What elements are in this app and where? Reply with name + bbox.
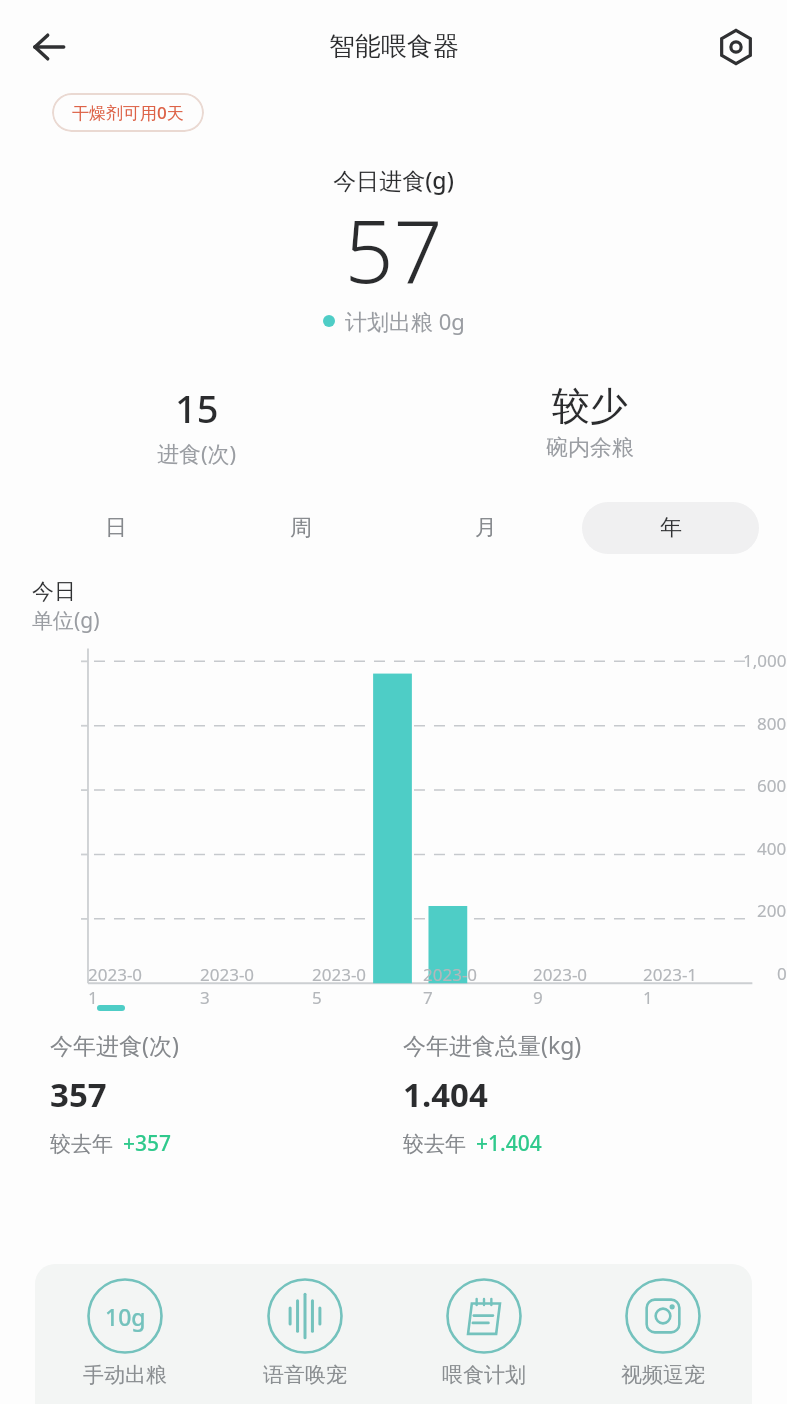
staticText: 今年进食总量(kg): [403, 1029, 582, 1060]
staticText: 周: [290, 514, 312, 542]
staticText: 手动出粮: [83, 1362, 167, 1388]
staticText: 57: [0, 191, 787, 308]
staticText: 今日: [32, 578, 76, 606]
button[interactable]: 10g: [35, 1278, 215, 1388]
staticText: +357: [123, 1129, 172, 1158]
staticText: 今年进食(次): [50, 1029, 179, 1060]
staticText: 月: [475, 514, 497, 542]
button[interactable]: 视频逗宠: [573, 1278, 752, 1388]
staticText: 年: [660, 514, 682, 542]
staticText: 单位(g): [32, 606, 100, 635]
button[interactable]: 月: [397, 502, 574, 554]
staticText: +1.404: [476, 1129, 542, 1158]
button[interactable]: 今年进食(次): [50, 1029, 403, 1158]
staticText: 今日进食(g): [0, 164, 787, 195]
staticText: 0: [777, 962, 787, 985]
staticText: 日: [105, 514, 127, 542]
staticText: 2023-09: [533, 963, 588, 1009]
staticText: 2023-03: [200, 963, 256, 1009]
staticText: 2023-07: [423, 963, 478, 1009]
staticText: 较去年: [403, 1131, 466, 1157]
button[interactable]: 较少: [393, 382, 787, 462]
button[interactable]: Settings: [707, 18, 765, 76]
staticText: 800: [757, 712, 787, 735]
button[interactable]: 干燥剂可用0天: [52, 93, 204, 132]
button[interactable]: 周: [212, 502, 389, 554]
staticText: 较去年: [50, 1131, 113, 1157]
staticText: 2023-05: [312, 963, 368, 1009]
button[interactable]: 年: [582, 502, 759, 554]
staticText: 计划出粮 0g: [345, 306, 465, 336]
button[interactable]: 15: [0, 382, 393, 468]
staticText: 视频逗宠: [621, 1362, 705, 1388]
staticText: 智能喂食器: [329, 30, 459, 63]
button[interactable]: Back: [20, 18, 78, 76]
staticText: 喂食计划: [442, 1362, 526, 1388]
staticText: 干燥剂可用0天: [72, 101, 184, 124]
staticText: 1.404: [403, 1072, 488, 1117]
staticText: 2023-01: [88, 963, 144, 1009]
staticText: 较少: [552, 382, 628, 430]
staticText: 600: [757, 774, 787, 797]
staticText: 1,000: [743, 649, 787, 672]
staticText: 15: [175, 382, 219, 434]
staticText: 400: [757, 837, 787, 860]
staticText: 10g: [105, 1301, 146, 1332]
button[interactable]: 语音唤宠: [215, 1278, 394, 1388]
staticText: 进食(次): [157, 438, 237, 468]
button[interactable]: 日: [28, 502, 204, 554]
staticText: 碗内余粮: [546, 434, 634, 462]
button[interactable]: 今年进食总量(kg): [403, 1029, 757, 1158]
staticText: 2023-11: [643, 963, 698, 1009]
staticText: 语音唤宠: [263, 1362, 347, 1388]
staticText: 200: [757, 899, 787, 922]
staticText: 357: [50, 1072, 107, 1117]
button[interactable]: 喂食计划: [394, 1278, 573, 1388]
